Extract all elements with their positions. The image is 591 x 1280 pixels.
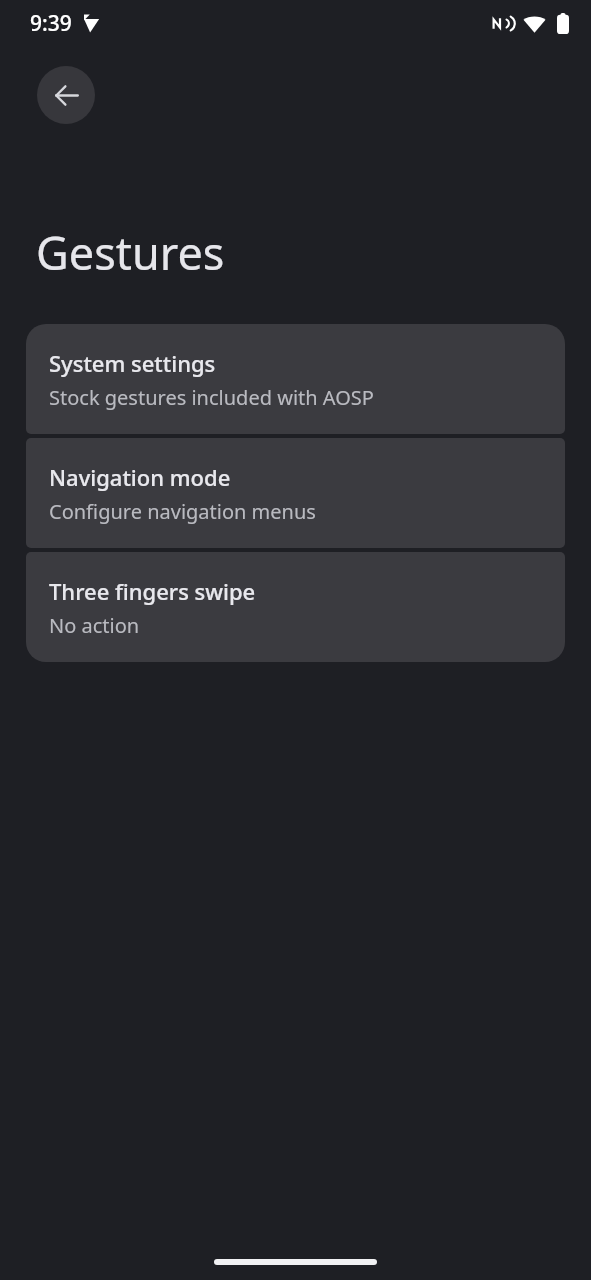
button[interactable]: Back [37,66,95,124]
staticText: Stock gestures included with AOSP [49,384,374,411]
staticText: Three fingers swipe [49,576,256,606]
staticText: Configure navigation menus [49,498,316,525]
staticText: 9:39 [30,9,72,38]
button[interactable]: Navigation mode [26,438,565,548]
staticText: System settings [49,348,216,378]
staticText: Navigation mode [49,462,231,492]
button[interactable]: System settings [26,324,565,434]
staticText: Gestures [36,222,225,283]
button[interactable]: Three fingers swipe [26,552,565,662]
staticText: No action [49,612,140,639]
